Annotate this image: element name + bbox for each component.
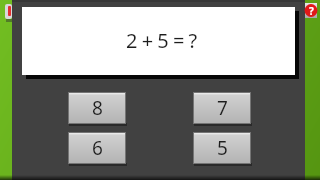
button[interactable]: 8 <box>68 92 126 124</box>
staticText: 8 <box>92 95 103 121</box>
button[interactable]: 6 <box>68 132 126 164</box>
staticText: 5 <box>217 135 228 161</box>
staticText: ? <box>309 4 314 18</box>
button[interactable]: 5 <box>193 132 251 164</box>
button[interactable]: ? <box>305 3 317 18</box>
staticText: 7 <box>217 95 228 121</box>
staticText: 6 <box>92 135 103 161</box>
button[interactable]: 7 <box>193 92 251 124</box>
staticText: 2 + 5 = ? <box>126 27 197 54</box>
button[interactable] <box>5 4 12 19</box>
